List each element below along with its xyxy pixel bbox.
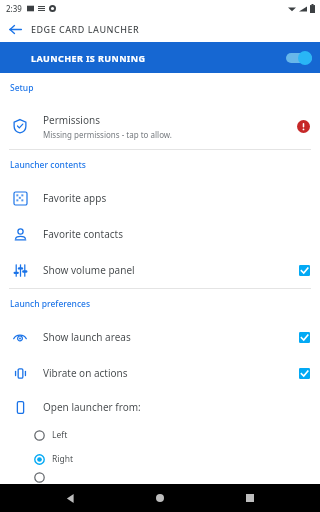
staticText: 2:39	[6, 3, 22, 14]
button[interactable]: Show launch areas	[0, 319, 320, 355]
button[interactable]: LAUNCHER IS RUNNING	[0, 42, 320, 73]
button[interactable]: Recents	[240, 488, 260, 508]
staticText: EDGE CARD LAUNCHER	[31, 23, 140, 35]
button[interactable]: Favorite contacts	[0, 216, 320, 252]
button[interactable]: Show volume panel	[0, 252, 320, 288]
staticText: Favorite apps	[43, 191, 310, 205]
button[interactable]: Right	[0, 447, 320, 471]
staticText: Show volume panel	[43, 263, 299, 277]
staticText: Missing permissions - tap to allow.	[43, 129, 172, 140]
button[interactable]: Back	[4, 18, 26, 40]
staticText: Launch preferences	[10, 298, 91, 310]
button[interactable]: Back	[60, 488, 80, 508]
staticText: Permissions	[43, 113, 100, 127]
staticText: Show launch areas	[43, 330, 299, 344]
staticText: Vibrate on actions	[43, 366, 299, 380]
button[interactable]: Permissions	[0, 103, 320, 149]
button[interactable]: Left	[0, 423, 320, 447]
staticText: Setup	[10, 82, 34, 94]
button[interactable]: Vibrate on actions	[0, 355, 320, 391]
staticText: Left	[52, 429, 68, 441]
button[interactable]: Favorite apps	[0, 180, 320, 216]
staticText: Launcher contents	[10, 159, 86, 171]
button[interactable]: Home	[150, 488, 170, 508]
staticText: LAUNCHER IS RUNNING	[31, 52, 146, 64]
staticText: Open launcher from:	[43, 400, 141, 414]
button[interactable]	[0, 471, 320, 484]
staticText: Favorite contacts	[43, 227, 310, 241]
staticText: Right	[52, 453, 74, 465]
